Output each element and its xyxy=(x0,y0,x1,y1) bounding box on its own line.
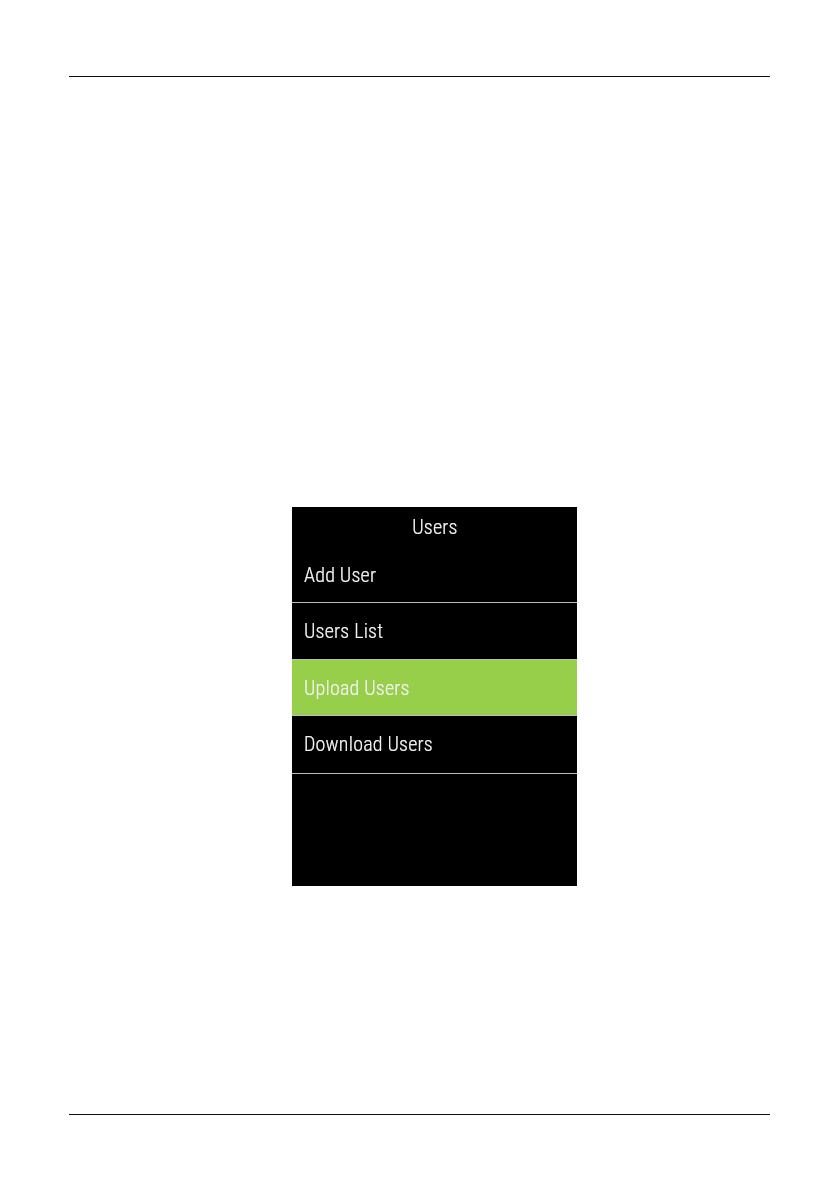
staticText: Users List xyxy=(304,619,384,642)
button[interactable]: Upload Users xyxy=(292,659,577,715)
button[interactable]: Users List xyxy=(292,602,577,659)
button[interactable]: Add User xyxy=(292,546,577,602)
staticText: Download Users xyxy=(304,732,433,755)
button[interactable]: Download Users xyxy=(292,715,577,772)
staticText: Add User xyxy=(304,563,377,586)
staticText: Users xyxy=(412,515,458,538)
staticText: Upload Users xyxy=(304,676,410,699)
